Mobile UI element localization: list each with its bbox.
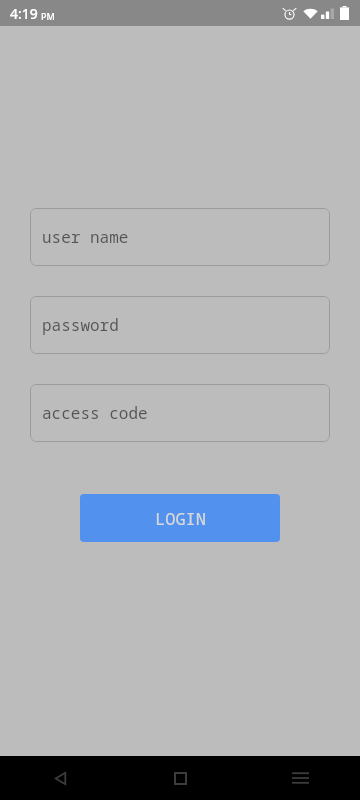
button[interactable]: Back xyxy=(0,756,120,800)
button[interactable]: user name xyxy=(30,208,330,266)
button[interactable]: Home xyxy=(120,756,240,800)
button[interactable]: Menu xyxy=(240,756,360,800)
staticText: PM xyxy=(41,10,55,22)
button[interactable]: LOGIN xyxy=(80,494,280,542)
button[interactable]: access code xyxy=(30,384,330,442)
staticText: 4:19 xyxy=(10,4,38,23)
staticText: user name xyxy=(42,226,129,248)
button[interactable]: password xyxy=(30,296,330,354)
staticText: password xyxy=(42,314,119,336)
staticText: access code xyxy=(42,402,148,424)
staticText: LOGIN xyxy=(155,507,206,530)
